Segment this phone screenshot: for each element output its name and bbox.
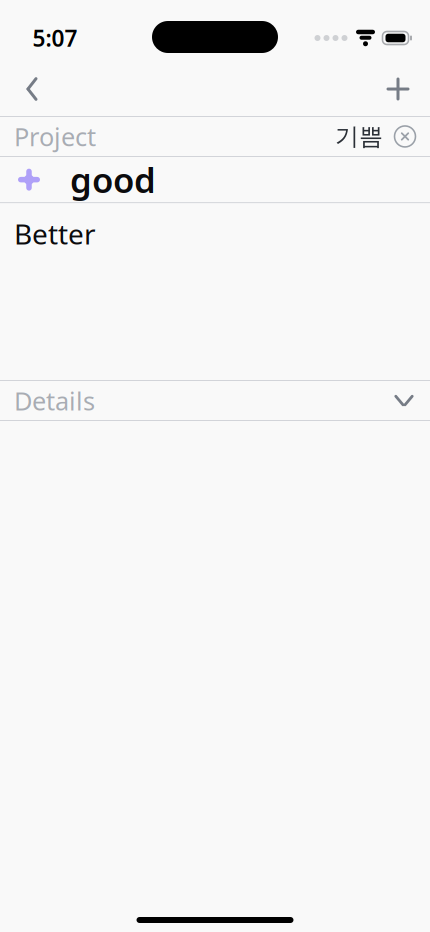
staticText: 기쁨 [335,122,383,151]
button[interactable]: Back [4,63,60,115]
staticText: 5:07 [32,23,77,53]
staticText: Project [14,120,96,153]
button[interactable]: Details [0,381,430,420]
staticText: Better [14,215,96,252]
staticText: good [70,157,156,203]
button[interactable]: Project [0,117,430,156]
staticText: Details [14,384,95,417]
button[interactable]: Add [370,63,426,115]
